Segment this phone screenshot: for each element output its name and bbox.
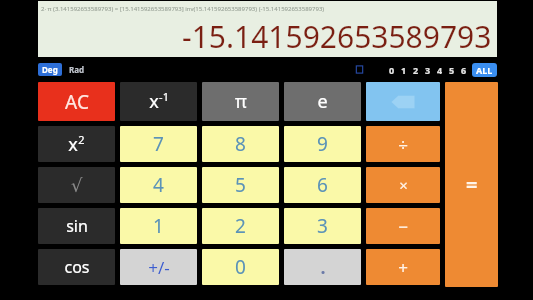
staticText: 4 [437, 64, 443, 76]
button[interactable]: 0 [202, 249, 279, 285]
staticText: √ [71, 175, 83, 196]
staticText: 2 [413, 64, 419, 76]
button[interactable]: 2 [202, 208, 279, 244]
staticText: ALL [476, 64, 493, 76]
staticText: x [68, 132, 78, 157]
button[interactable]: π [202, 82, 279, 121]
button[interactable]: . [284, 249, 361, 285]
button[interactable]: 1 [120, 208, 197, 244]
button[interactable]: AC [38, 82, 115, 121]
button[interactable]: sin [38, 208, 115, 244]
button[interactable]: 6 [458, 64, 470, 76]
staticText: -15.141592653589793 [182, 16, 492, 57]
staticText: 3 [425, 64, 431, 76]
button[interactable]: 3 [284, 208, 361, 244]
button[interactable]: cos [38, 249, 115, 285]
staticText: = [466, 171, 478, 198]
staticText: 6 [461, 64, 467, 76]
staticText: Rad [69, 64, 85, 75]
staticText: 7 [153, 131, 164, 157]
staticText: cos [64, 256, 90, 278]
button[interactable]: Rad [67, 64, 87, 75]
staticText: − [398, 215, 408, 238]
button[interactable]: Square root [38, 167, 115, 203]
button[interactable]: 9 [284, 126, 361, 162]
staticText: 6 [317, 172, 328, 198]
staticText: 0 [389, 64, 395, 76]
staticText: -1 [159, 89, 169, 104]
staticText: 4 [153, 172, 164, 198]
button[interactable]: + [366, 249, 440, 285]
button[interactable]: 5 [446, 64, 458, 76]
button[interactable]: 2· π (3.141592653589793) = [15.141592653… [38, 1, 497, 57]
button[interactable]: − [366, 208, 440, 244]
button[interactable]: 4 [120, 167, 197, 203]
button[interactable]: 6 [284, 167, 361, 203]
staticText: 1 [401, 64, 407, 76]
staticText: 5 [235, 172, 246, 198]
button[interactable]: 3 [422, 64, 434, 76]
staticText: 0 [235, 254, 246, 280]
button[interactable]: x [120, 82, 197, 121]
staticText: 3 [317, 213, 328, 239]
staticText: x [149, 89, 159, 114]
button[interactable]: 4 [434, 64, 446, 76]
button[interactable]: Memory [355, 65, 364, 74]
staticText: ÷ [398, 133, 408, 156]
button[interactable]: × [366, 167, 440, 203]
staticText: 5 [449, 64, 455, 76]
staticText: 2 [235, 213, 246, 239]
button[interactable]: +/- [120, 249, 197, 285]
staticText: × [399, 175, 408, 195]
staticText: 2 [78, 132, 85, 147]
staticText: +/- [148, 256, 170, 279]
button[interactable]: = [445, 82, 498, 287]
staticText: 2· π (3.141592653589793) = [15.141592653… [41, 5, 325, 13]
staticText: e [317, 89, 328, 114]
staticText: 8 [235, 131, 246, 157]
staticText: π [235, 89, 247, 114]
staticText: AC [65, 89, 89, 115]
button[interactable]: Backspace [366, 82, 440, 121]
button[interactable]: ALL [472, 63, 497, 77]
button[interactable]: ÷ [366, 126, 440, 162]
staticText: sin [66, 215, 88, 237]
button[interactable]: e [284, 82, 361, 121]
button[interactable]: 2 [410, 64, 422, 76]
staticText: 9 [317, 131, 328, 157]
staticText: + [398, 256, 408, 279]
button[interactable]: Deg [38, 63, 62, 76]
staticText: . [320, 255, 326, 280]
staticText: Deg [42, 64, 58, 75]
button[interactable]: 1 [398, 64, 410, 76]
button[interactable]: x [38, 126, 115, 162]
staticText: 1 [153, 213, 164, 239]
button[interactable]: 7 [120, 126, 197, 162]
button[interactable]: 0 [386, 64, 398, 76]
button[interactable]: 5 [202, 167, 279, 203]
button[interactable]: 8 [202, 126, 279, 162]
